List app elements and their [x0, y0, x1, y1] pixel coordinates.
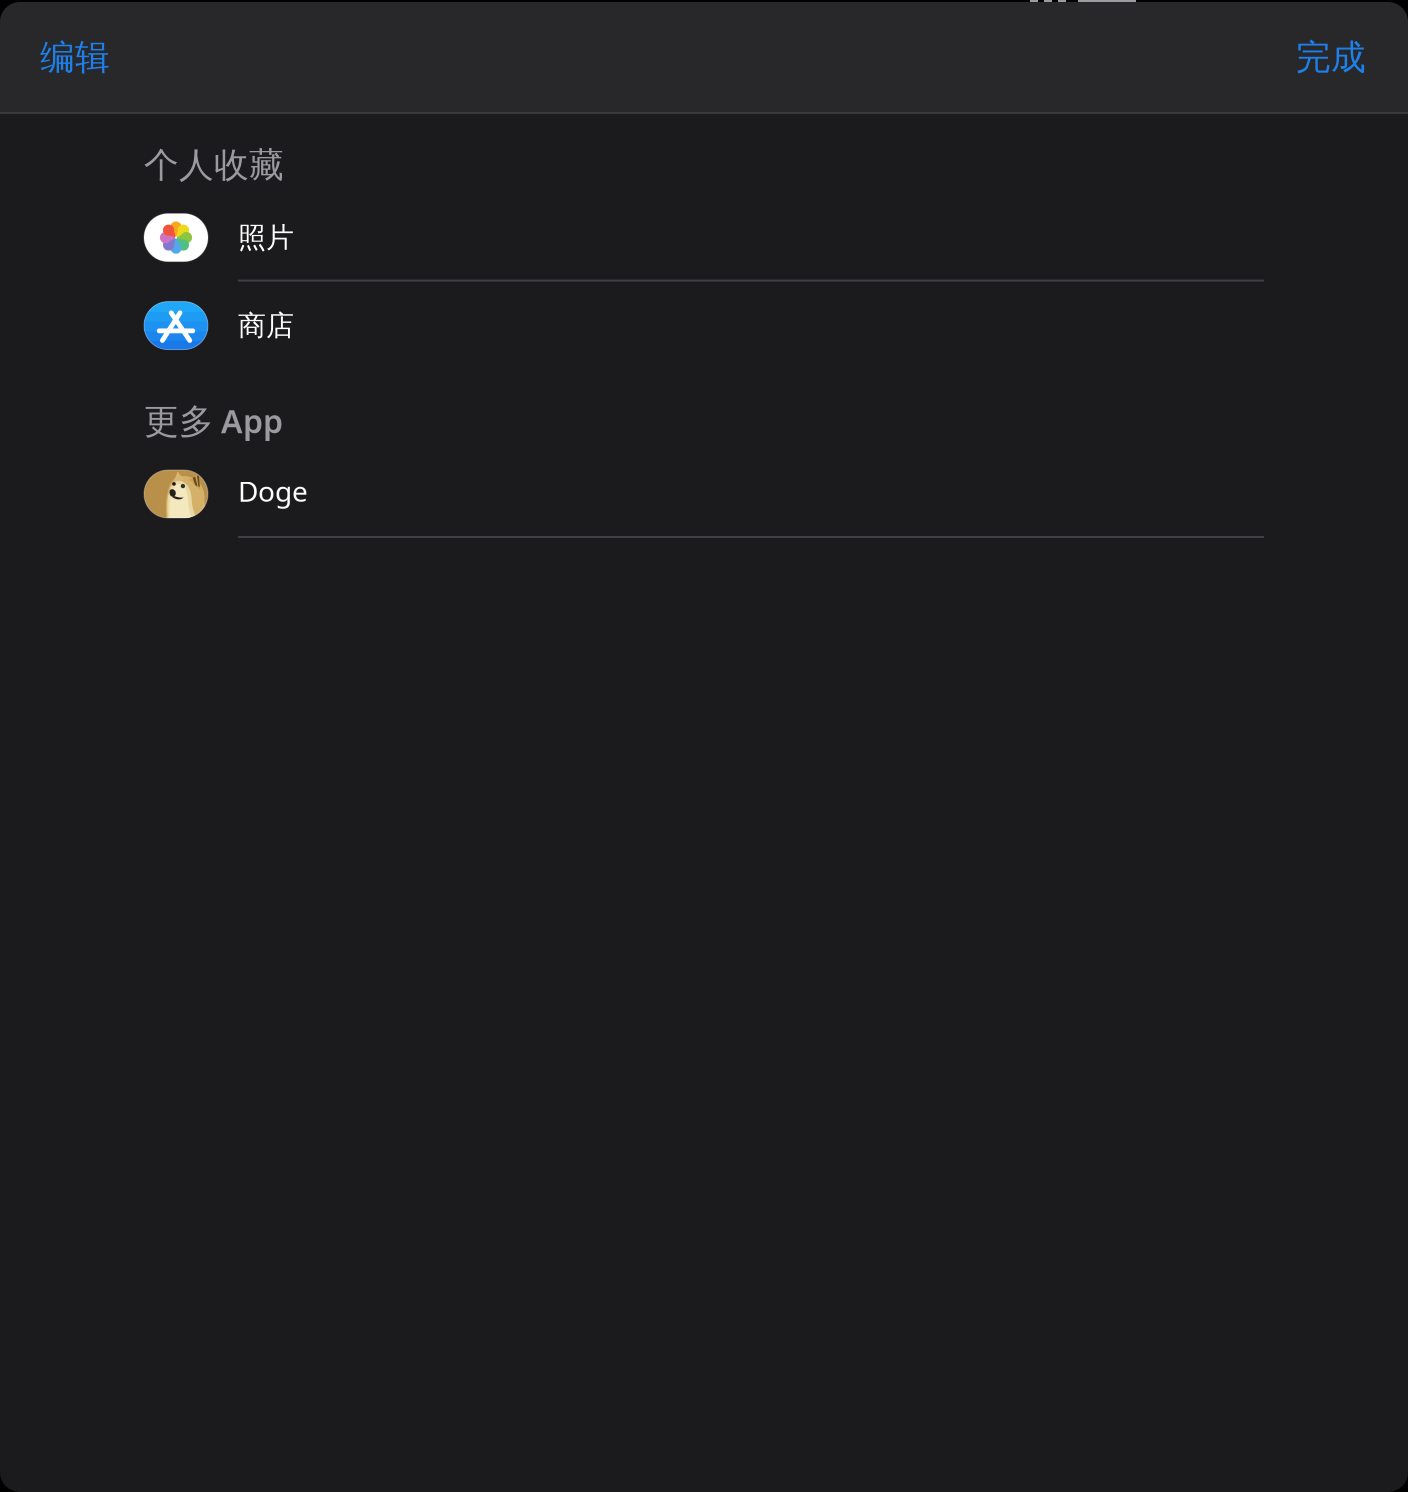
staticText: 商店: [238, 308, 294, 343]
staticText: 完成: [1296, 36, 1366, 79]
button[interactable]: Doge: [0, 450, 1408, 538]
button[interactable]: 照片: [0, 194, 1408, 282]
staticText: 个人收藏: [144, 144, 284, 187]
button[interactable]: 完成: [1266, 1, 1408, 115]
staticText: 编辑: [40, 36, 110, 79]
button[interactable]: 编辑: [0, 1, 140, 115]
staticText: 更多: [144, 400, 214, 443]
staticText: 照片: [238, 220, 294, 255]
staticText: Doge: [238, 472, 308, 510]
button[interactable]: 商店: [0, 282, 1408, 370]
staticText: App: [221, 400, 283, 442]
